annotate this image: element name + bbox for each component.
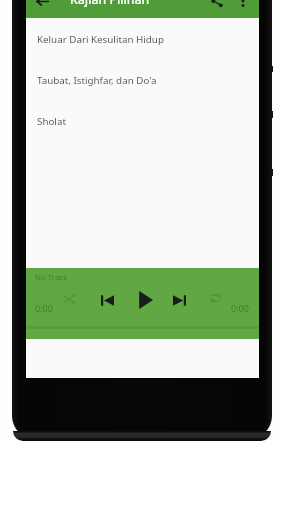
button[interactable]: Repeat [204,287,226,309]
button[interactable]: Shuffle [59,288,81,310]
button[interactable]: Taubat, Istighfar, dan Do'a [26,60,259,101]
staticText: Keluar Dari Kesulitan Hidup [37,33,164,46]
button[interactable]: More options [228,0,258,10]
button[interactable]: Next [168,289,190,311]
staticText: Sholat [37,115,66,128]
button[interactable]: Previous [96,289,118,311]
button[interactable]: Share [202,0,232,10]
button[interactable]: Sholat [26,101,259,142]
button[interactable]: Play [134,289,156,311]
button[interactable]: Keluar Dari Kesulitan Hidup [26,19,259,60]
staticText: 0:00 [231,302,249,314]
staticText: Taubat, Istighfar, dan Do'a [37,74,157,87]
staticText: No Track [35,272,68,283]
staticText: 0:00 [35,302,53,314]
staticText: Kajian Pilihan [70,0,150,8]
button[interactable]: Back [27,0,57,10]
